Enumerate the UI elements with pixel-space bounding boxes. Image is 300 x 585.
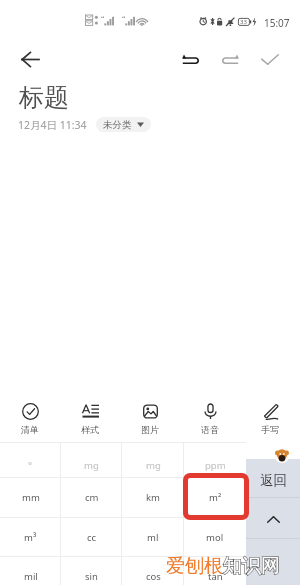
button[interactable]: mg: [122, 442, 184, 477]
button[interactable]: 语音: [180, 397, 240, 442]
staticText: mg: [84, 459, 99, 472]
button[interactable]: cm: [61, 477, 122, 517]
staticText: km: [146, 491, 160, 504]
button[interactable]: ppm: [184, 442, 246, 477]
button[interactable]: Redo: [212, 42, 248, 76]
staticText: 标题: [19, 82, 69, 113]
staticText: mil: [24, 570, 38, 583]
button[interactable]: cos: [122, 556, 184, 585]
button[interactable]: Collapse keyboard: [246, 498, 300, 538]
staticText: sin: [85, 570, 98, 583]
button[interactable]: cc: [61, 517, 122, 557]
button[interactable]: Done: [252, 42, 288, 76]
staticText: 爱刨根: [166, 554, 223, 578]
staticText: cm: [85, 491, 99, 504]
button[interactable]: Back: [12, 41, 48, 77]
staticText: tan: [208, 570, 223, 583]
button[interactable]: Undo: [172, 42, 208, 76]
staticText: ppm: [205, 459, 226, 472]
button[interactable]: ml: [122, 517, 184, 557]
staticText: 手写: [261, 424, 279, 435]
staticText: 图片: [141, 424, 159, 435]
staticText: mol: [206, 531, 224, 544]
staticText: 知识网: [223, 554, 280, 578]
button[interactable]: m²: [184, 477, 246, 517]
staticText: cos: [146, 570, 161, 583]
button[interactable]: 清单: [0, 397, 60, 442]
staticText: 样式: [81, 424, 99, 435]
button[interactable]: m³: [0, 517, 61, 557]
button[interactable]: sin: [61, 556, 122, 585]
staticText: 12月4日 11:34: [18, 118, 87, 132]
staticText: cc: [87, 531, 97, 544]
staticText: 知识网: [223, 554, 280, 578]
staticText: 清单: [21, 424, 39, 435]
staticText: m³: [24, 531, 37, 544]
button[interactable]: 未分类: [96, 117, 151, 132]
button[interactable]: km: [122, 477, 184, 517]
button[interactable]: tan: [184, 556, 246, 585]
button[interactable]: 返回: [246, 459, 300, 497]
staticText: mm: [22, 491, 40, 504]
staticText: °: [28, 459, 33, 472]
button[interactable]: °: [0, 442, 61, 477]
staticText: 返回: [260, 472, 287, 489]
staticText: 33: [240, 18, 247, 26]
staticText: 语音: [201, 424, 219, 435]
staticText: 未分类: [103, 119, 132, 131]
button[interactable]: mil: [0, 556, 61, 585]
button[interactable]: mg: [61, 442, 122, 477]
button[interactable]: mol: [184, 517, 246, 557]
staticText: ml: [147, 531, 159, 544]
button[interactable]: 图片: [120, 397, 180, 442]
button[interactable]: mm: [0, 477, 61, 517]
staticText: mg: [146, 459, 161, 472]
button[interactable]: 样式: [60, 397, 120, 442]
staticText: 15:07: [264, 16, 290, 30]
button[interactable]: 手写: [240, 397, 300, 442]
staticText: m²: [209, 491, 222, 504]
